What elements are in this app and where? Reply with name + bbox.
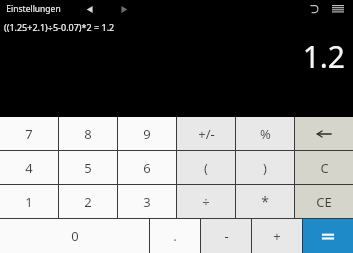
staticText: 8 — [84, 125, 92, 143]
button[interactable]: + — [252, 219, 302, 253]
button[interactable]: CE — [295, 185, 353, 218]
button[interactable]: Previous — [82, 2, 96, 16]
button[interactable]: Einstellungen — [6, 0, 61, 18]
staticText: % — [260, 125, 271, 143]
staticText: CE — [316, 193, 332, 211]
button[interactable]: 0 — [0, 219, 149, 253]
button[interactable]: Backspace — [295, 117, 353, 150]
button[interactable]: 8 — [59, 117, 117, 150]
button[interactable]: - — [201, 219, 251, 253]
button[interactable]: . — [150, 219, 200, 253]
button[interactable]: 2 — [59, 185, 117, 218]
button[interactable]: Undo — [306, 1, 322, 17]
staticText: 6 — [143, 159, 151, 177]
button[interactable]: 1 — [0, 185, 58, 218]
staticText: ÷ — [202, 193, 210, 211]
button[interactable]: Menu — [329, 0, 347, 18]
button[interactable]: 6 — [118, 151, 176, 184]
button[interactable]: C — [295, 151, 353, 184]
button[interactable]: Next — [117, 2, 131, 16]
staticText: 9 — [143, 125, 151, 143]
staticText: - — [224, 227, 229, 245]
button[interactable]: ( — [177, 151, 235, 184]
button[interactable]: 7 — [0, 117, 58, 150]
staticText: + — [273, 227, 281, 245]
staticText: * — [261, 192, 269, 211]
button[interactable]: +/- — [177, 117, 235, 150]
button[interactable]: ) — [236, 151, 294, 184]
staticText: +/- — [198, 125, 215, 143]
staticText: C — [320, 159, 329, 177]
staticText: ((1.25+2.1)÷5-0.07)*2 = 1.2 — [4, 21, 115, 33]
button[interactable]: 3 — [118, 185, 176, 218]
button[interactable]: 9 — [118, 117, 176, 150]
staticText: ) — [263, 159, 267, 177]
staticText: 4 — [25, 159, 33, 177]
staticText: 3 — [143, 193, 151, 211]
staticText: . — [173, 227, 177, 245]
staticText: 1 — [25, 193, 33, 211]
button[interactable]: ÷ — [177, 185, 235, 218]
staticText: 2 — [84, 193, 92, 211]
button[interactable]: % — [236, 117, 294, 150]
staticText: 0 — [71, 227, 79, 245]
staticText: 7 — [25, 125, 33, 143]
staticText: 1.2 — [302, 36, 345, 77]
button[interactable]: 4 — [0, 151, 58, 184]
button[interactable]: * — [236, 185, 294, 218]
staticText: ( — [204, 159, 208, 177]
staticText: 5 — [84, 159, 92, 177]
button[interactable]: 5 — [59, 151, 117, 184]
button[interactable]: Equals — [303, 219, 353, 253]
staticText: Einstellungen — [6, 3, 61, 15]
